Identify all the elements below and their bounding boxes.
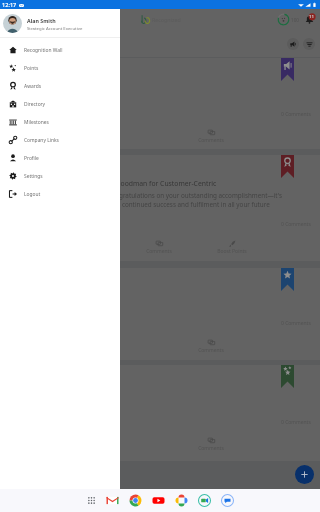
button[interactable]: Filter bbox=[303, 38, 315, 50]
button[interactable]: Alan Smith bbox=[0, 10, 120, 37]
staticText: Settings bbox=[24, 173, 43, 180]
button[interactable]: Logout bbox=[0, 185, 120, 203]
staticText: 0 Comments bbox=[281, 221, 311, 228]
button[interactable]: Comments bbox=[194, 339, 228, 354]
staticText: Profile bbox=[24, 155, 39, 162]
button[interactable]: Comments bbox=[194, 437, 228, 452]
button[interactable]: Profile bbox=[0, 149, 120, 167]
button[interactable]: Comments bbox=[142, 240, 176, 255]
staticText: 100 bbox=[291, 17, 299, 23]
button[interactable]: Messages bbox=[220, 493, 235, 508]
staticText: Comments bbox=[198, 445, 224, 452]
staticText: 11 bbox=[309, 14, 314, 20]
staticText: 12:17 bbox=[2, 1, 17, 9]
button[interactable]: Milestones bbox=[0, 113, 120, 131]
button[interactable]: Company Links bbox=[0, 131, 120, 149]
staticText: You really pulled it off! Congratulation… bbox=[40, 191, 292, 209]
button[interactable]: Points bbox=[0, 59, 120, 77]
button[interactable]: Notifications bbox=[304, 14, 315, 25]
staticText: Recognition Wall bbox=[24, 47, 63, 54]
staticText: Alan Smith bbox=[27, 17, 56, 24]
button[interactable]: All apps bbox=[86, 495, 97, 506]
button[interactable]: Chrome bbox=[128, 493, 143, 508]
button[interactable]: Meet bbox=[197, 493, 212, 508]
staticText: Milestones bbox=[24, 119, 49, 126]
button[interactable]: Comments bbox=[194, 129, 228, 144]
button[interactable]: Directory bbox=[0, 95, 120, 113]
staticText: Points bbox=[24, 65, 39, 72]
staticText: Boost Points bbox=[217, 248, 247, 255]
button[interactable]: Photos bbox=[174, 493, 189, 508]
button[interactable]: Boost Points bbox=[215, 240, 249, 255]
button[interactable]: Create recognition bbox=[295, 465, 314, 484]
button[interactable]: Your points bbox=[277, 13, 290, 26]
staticText: Awards bbox=[24, 83, 41, 90]
button[interactable]: Settings bbox=[0, 167, 120, 185]
staticText: Directory bbox=[24, 101, 46, 108]
button[interactable]: Gmail bbox=[105, 493, 120, 508]
staticText: 0 Comments bbox=[281, 419, 311, 426]
button[interactable]: Announcements bbox=[287, 38, 299, 50]
button[interactable]: YouTube bbox=[151, 493, 166, 508]
staticText: Strategic Account Executive bbox=[27, 25, 83, 31]
staticText: Comments bbox=[198, 137, 224, 144]
staticText: 0 Comments bbox=[281, 320, 311, 327]
staticText: Comments bbox=[198, 347, 224, 354]
button[interactable]: Recognition Wall bbox=[0, 41, 120, 59]
staticText: 0 Comments bbox=[281, 111, 311, 118]
staticText: Alan Smith recognized Jane Goodman for C… bbox=[27, 179, 217, 188]
button[interactable]: Awards bbox=[0, 77, 120, 95]
staticText: Company Links bbox=[24, 137, 59, 144]
staticText: Logout bbox=[24, 191, 41, 198]
staticText: Comments bbox=[146, 248, 172, 255]
